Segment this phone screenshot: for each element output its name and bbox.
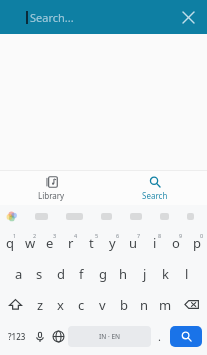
button[interactable]: 4 — [60, 227, 81, 258]
button[interactable]: z — [30, 289, 50, 320]
staticText: 1 — [13, 232, 17, 239]
staticText: q — [6, 234, 14, 252]
staticText: u — [129, 234, 138, 252]
staticText: 9 — [179, 232, 183, 239]
button[interactable]: Search — [103, 171, 207, 205]
button[interactable]: Change language — [49, 320, 68, 353]
staticText: 2 — [33, 232, 37, 239]
staticText: 4 — [74, 232, 78, 239]
button[interactable]: 2 — [20, 227, 40, 258]
staticText: b — [120, 296, 128, 314]
staticText: IN · EN — [99, 332, 121, 341]
staticText: c — [78, 296, 85, 314]
button[interactable]: 3 — [40, 227, 60, 258]
button[interactable]: Shift — [0, 289, 30, 320]
button[interactable]: 7 — [123, 227, 144, 258]
staticText: 0 — [200, 232, 204, 239]
button[interactable]: g — [92, 258, 113, 289]
button[interactable]: IN · EN — [68, 326, 151, 347]
button[interactable]: v — [92, 289, 113, 320]
button[interactable]: 9 — [165, 227, 186, 258]
staticText: t — [89, 234, 94, 252]
button[interactable]: Close search — [175, 4, 201, 30]
button[interactable]: k — [155, 258, 176, 289]
button[interactable]: 1 — [0, 227, 20, 258]
button[interactable]: 5 — [81, 227, 102, 258]
staticText: p — [193, 234, 201, 252]
staticText: r — [68, 234, 74, 252]
staticText: 7 — [137, 232, 141, 239]
button[interactable]: m — [155, 289, 176, 320]
staticText: l — [185, 265, 189, 283]
button[interactable]: . — [151, 320, 168, 353]
button[interactable]: f — [71, 258, 92, 289]
staticText: x — [57, 296, 64, 314]
button[interactable]: l — [176, 258, 197, 289]
staticText: 5 — [95, 232, 99, 239]
staticText: Library — [38, 190, 65, 201]
button[interactable]: ?123 — [3, 320, 30, 353]
staticText: v — [99, 296, 106, 314]
button[interactable]: 8 — [144, 227, 165, 258]
button[interactable]: x — [50, 289, 71, 320]
staticText: i — [153, 234, 157, 252]
staticText: Search — [142, 190, 168, 201]
staticText: . — [158, 329, 161, 344]
staticText: d — [57, 265, 65, 283]
staticText: 6 — [116, 232, 120, 239]
staticText: ?123 — [8, 331, 26, 342]
button[interactable]: d — [50, 258, 71, 289]
staticText: a — [15, 265, 23, 283]
staticText: z — [37, 296, 44, 314]
button[interactable]: s — [29, 258, 50, 289]
staticText: h — [119, 265, 128, 283]
button[interactable]: Search — [170, 326, 202, 347]
staticText: 8 — [158, 232, 162, 239]
staticText: y — [109, 234, 116, 252]
staticText: 3 — [53, 232, 57, 239]
button[interactable]: Backspace — [176, 289, 207, 320]
staticText: w — [25, 234, 36, 252]
button[interactable]: Library — [0, 171, 103, 205]
staticText: k — [162, 265, 169, 283]
button[interactable]: 0 — [186, 227, 207, 258]
button[interactable]: h — [113, 258, 134, 289]
staticText: m — [159, 296, 172, 314]
staticText: s — [36, 265, 43, 283]
staticText: Search... — [30, 10, 74, 25]
staticText: o — [172, 234, 180, 252]
button[interactable]: b — [113, 289, 134, 320]
button[interactable]: c — [71, 289, 92, 320]
button[interactable]: a — [9, 258, 29, 289]
button[interactable]: n — [134, 289, 155, 320]
staticText: n — [140, 296, 149, 314]
staticText: g — [99, 265, 107, 283]
button[interactable]: Voice input — [30, 320, 49, 353]
button[interactable]: 6 — [102, 227, 123, 258]
staticText: j — [143, 265, 147, 283]
staticText: f — [79, 265, 84, 283]
staticText: e — [46, 234, 54, 252]
button[interactable]: j — [134, 258, 155, 289]
